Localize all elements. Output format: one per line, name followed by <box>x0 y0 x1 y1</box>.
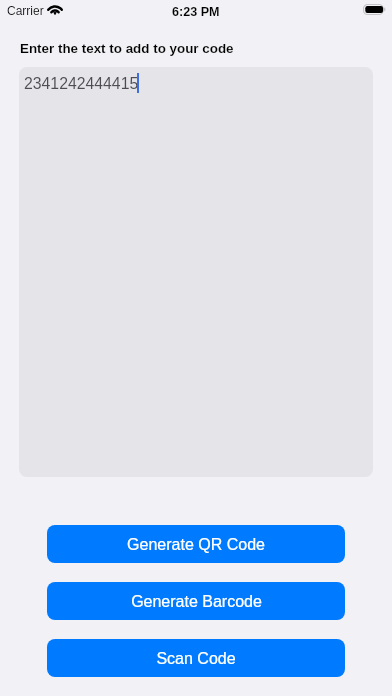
staticText: 2341242444415 <box>24 75 139 93</box>
button[interactable]: Scan Code <box>47 639 345 677</box>
other: Wi-Fi signal <box>47 4 63 15</box>
button[interactable]: Generate QR Code <box>47 525 345 563</box>
staticText: Generate Barcode <box>131 593 262 611</box>
staticText: Scan Code <box>156 650 236 668</box>
button[interactable]: Generate Barcode <box>47 582 345 620</box>
staticText: 6:23 PM <box>172 5 220 19</box>
button[interactable]: 2341242444415 <box>19 67 373 477</box>
staticText: Carrier <box>7 4 44 17</box>
other: Battery full <box>363 4 387 15</box>
staticText: Generate QR Code <box>127 536 265 554</box>
staticText: Enter the text to add to your code <box>20 41 234 56</box>
